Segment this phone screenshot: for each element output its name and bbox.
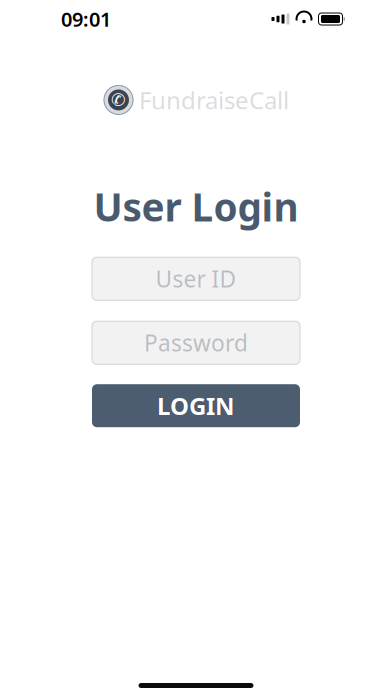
staticText: Password xyxy=(144,328,248,358)
button[interactable]: LOGIN xyxy=(92,384,300,427)
staticText: User Login xyxy=(93,181,298,232)
staticText: 09:01 xyxy=(61,6,111,32)
staticText: User ID xyxy=(155,264,236,294)
staticText: ✆ xyxy=(111,90,126,110)
staticText: FundraiseCall xyxy=(139,84,289,116)
staticText: LOGIN xyxy=(157,390,235,422)
button[interactable]: Password xyxy=(92,321,300,364)
button[interactable]: User ID xyxy=(92,257,300,300)
